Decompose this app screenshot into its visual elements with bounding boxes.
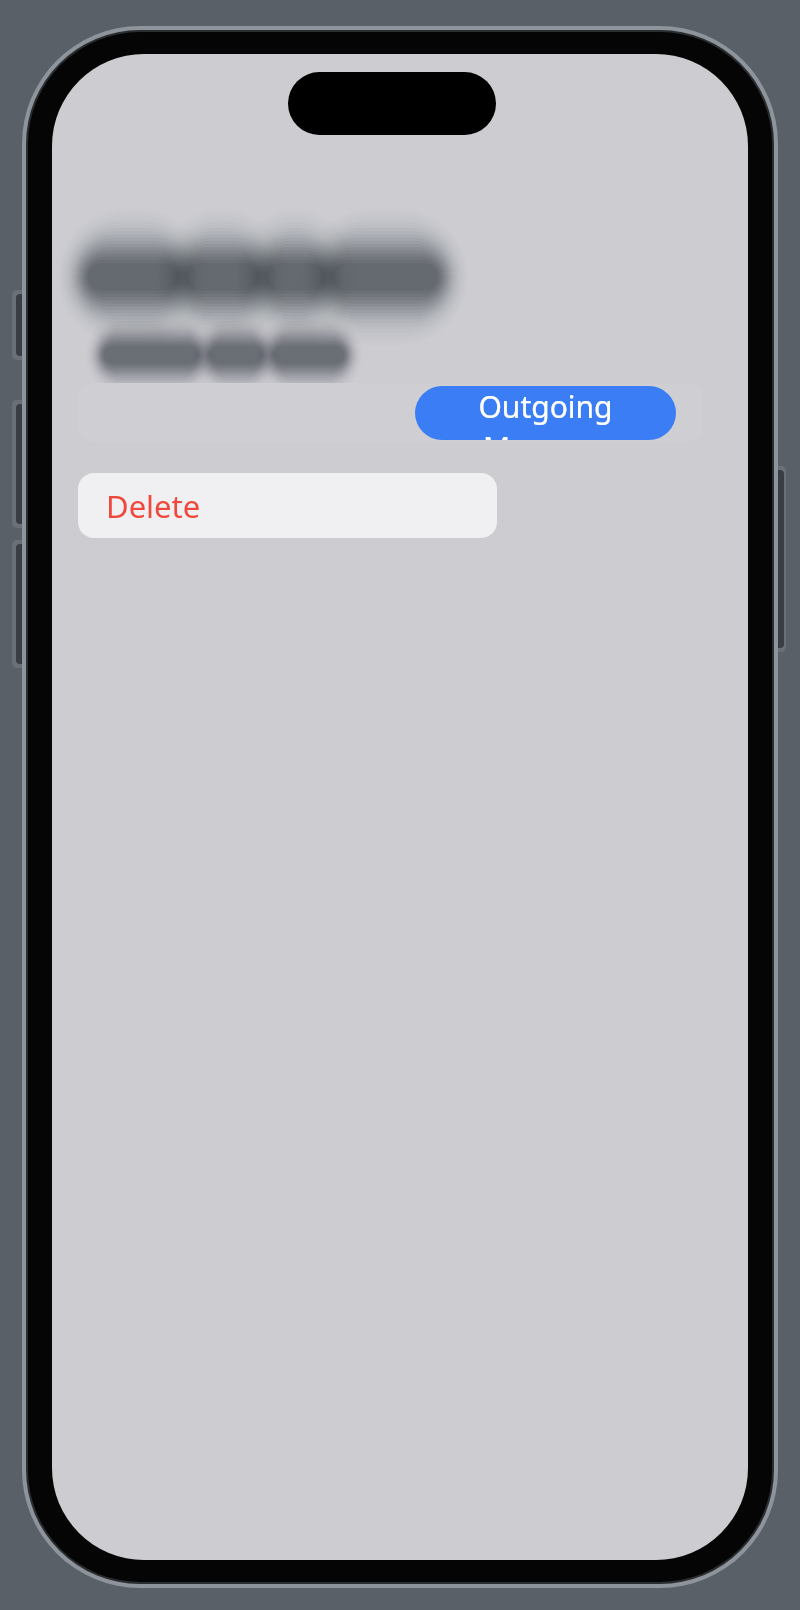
- button[interactable]: Outgoing Message: [77, 383, 703, 442]
- staticText: Delete: [106, 485, 201, 527]
- button[interactable]: Delete: [78, 473, 497, 538]
- staticText: Outgoing Message: [415, 386, 676, 440]
- button[interactable]: Outgoing Message: [415, 386, 676, 440]
